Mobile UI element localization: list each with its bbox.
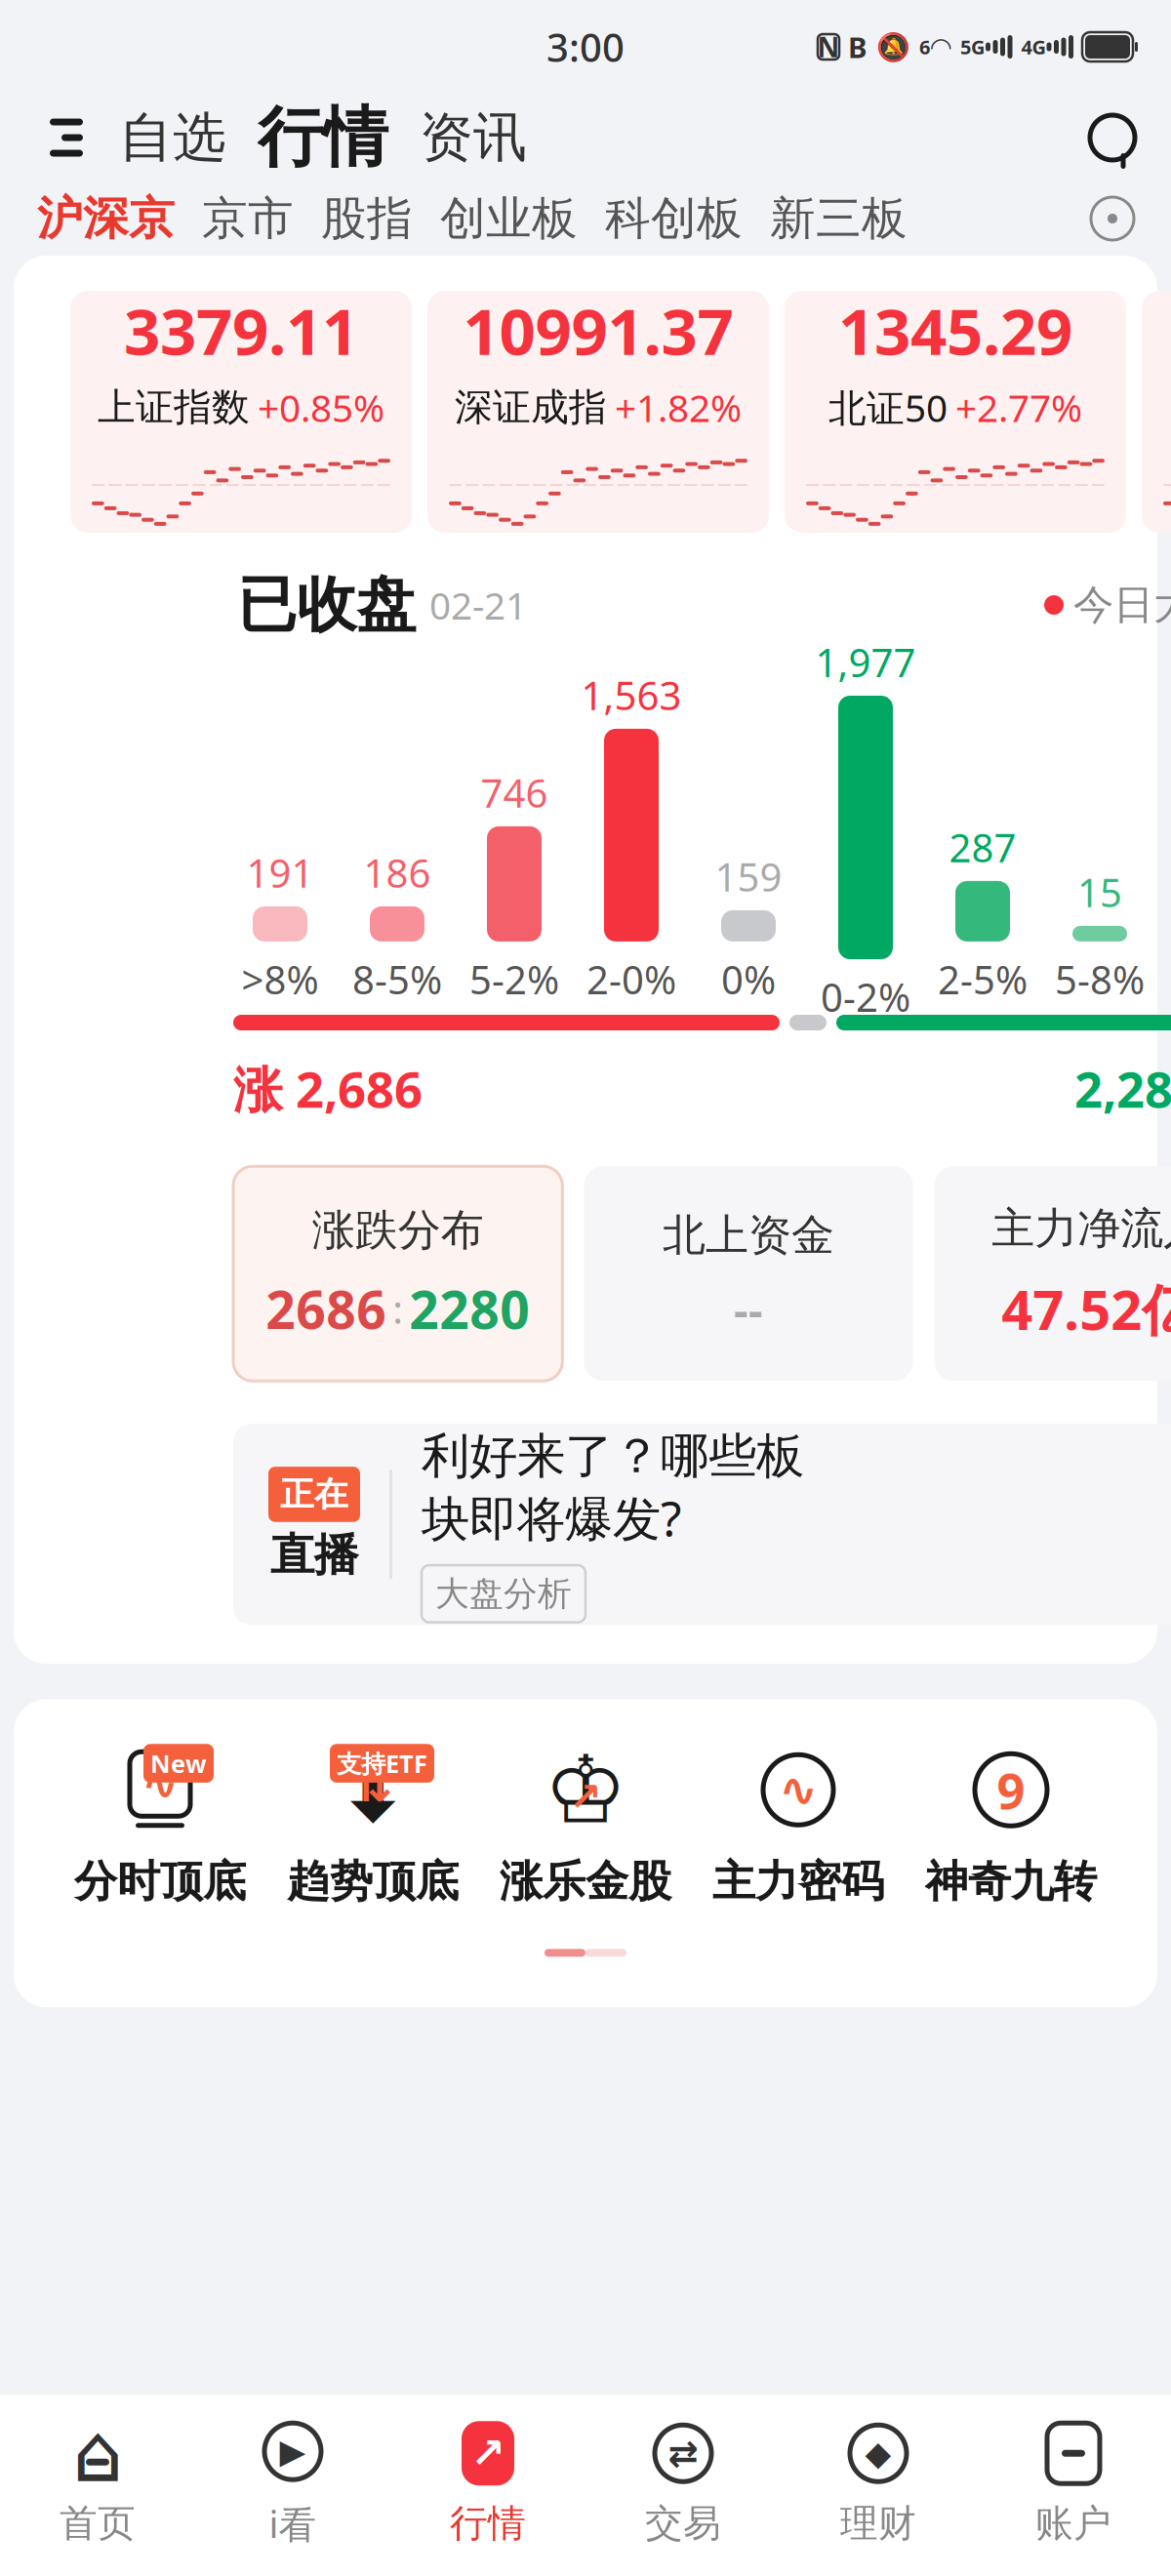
staticText: 2-5%: [938, 953, 1028, 1005]
staticText: 趋势顶底: [287, 1855, 459, 1908]
button[interactable]: Search: [1073, 99, 1151, 177]
button[interactable]: ∿: [54, 1744, 266, 1908]
staticText: 深证成指: [455, 384, 607, 430]
button[interactable]: 自选: [103, 99, 242, 177]
staticText: 15: [1077, 866, 1122, 918]
button[interactable]: Menu: [29, 99, 103, 177]
button[interactable]: 行情: [242, 99, 404, 177]
staticText: ⇄: [668, 2433, 698, 2474]
staticText: ∿: [141, 1759, 179, 1809]
button[interactable]: 3379.11: [70, 291, 412, 533]
staticText: ◠: [931, 32, 951, 62]
staticText: 北上资金: [663, 1209, 834, 1262]
staticText: 自选: [119, 105, 226, 170]
button[interactable]: ▶: [195, 2410, 390, 2556]
staticText: 1,563: [581, 669, 682, 721]
staticText: 1345.29: [838, 288, 1072, 372]
staticText: 3379.11: [124, 288, 358, 372]
staticText: 159: [715, 851, 782, 902]
staticText: 5-8%: [1055, 953, 1145, 1005]
staticText: 行情: [258, 98, 388, 178]
staticText: 正在: [280, 1474, 348, 1515]
button[interactable]: ↗: [390, 2410, 585, 2556]
staticText: ⬇: [335, 1738, 411, 1841]
staticText: :: [392, 1283, 403, 1335]
button[interactable]: ∿: [692, 1744, 905, 1908]
button[interactable]: 1345.29: [785, 291, 1126, 533]
staticText: 6: [919, 34, 930, 60]
staticText: 10991.37: [463, 288, 733, 372]
staticText: i看: [269, 2498, 317, 2548]
staticText: ↗: [470, 2430, 505, 2477]
staticText: +1.82%: [615, 382, 742, 432]
staticText: 8-5%: [352, 953, 442, 1005]
button[interactable]: Edit categories: [1077, 183, 1148, 254]
button[interactable]: 10991.37: [427, 291, 769, 533]
staticText: 交易: [645, 2500, 721, 2547]
staticText: 支持ETF: [337, 1747, 427, 1780]
staticText: B: [848, 28, 868, 66]
button[interactable]: 京市: [188, 183, 307, 254]
staticText: 首页: [60, 2500, 136, 2547]
button[interactable]: 沪深京: [23, 183, 188, 254]
button[interactable]: ♔: [479, 1744, 692, 1908]
staticText: 2,280 跌: [1074, 1056, 1171, 1121]
button[interactable]: 新三板: [756, 183, 921, 254]
staticText: 5G: [960, 34, 985, 60]
button[interactable]: ⌂: [0, 2410, 195, 2556]
staticText: 0-2%: [821, 971, 910, 1023]
staticText: 京市: [202, 191, 294, 246]
button[interactable]: 主力净流入: [935, 1166, 1171, 1381]
staticText: 神奇九转: [925, 1855, 1097, 1908]
staticText: 47.52亿: [1001, 1272, 1171, 1345]
button[interactable]: 涨跌分布: [233, 1166, 562, 1381]
button[interactable]: 账户: [976, 2410, 1171, 2556]
staticText: 4G: [1021, 34, 1046, 60]
staticText: 利好来了？哪些板块即将爆发?: [422, 1426, 804, 1550]
staticText: 3:00: [546, 21, 625, 73]
staticText: 涨乐金股: [500, 1855, 671, 1908]
staticText: 上证指数: [98, 384, 250, 430]
staticText: 创业板: [440, 191, 578, 246]
staticText: ↗: [569, 1775, 602, 1819]
staticText: 账户: [1035, 2500, 1111, 2547]
staticText: 直播: [270, 1528, 358, 1582]
button[interactable]: ◆: [781, 2410, 976, 2556]
staticText: 2280: [409, 1274, 530, 1343]
staticText: 股指: [321, 191, 413, 246]
button[interactable]: 正在: [233, 1424, 1171, 1625]
staticText: --: [734, 1279, 763, 1338]
staticText: ▶: [280, 2432, 306, 2471]
staticText: 分时顶底: [74, 1855, 246, 1908]
button[interactable]: 股指: [307, 183, 426, 254]
button[interactable]: 北上资金: [584, 1166, 913, 1381]
staticText: 今日大盘: [1073, 580, 1171, 630]
staticText: 资讯: [420, 105, 527, 170]
button[interactable]: 创业板: [426, 183, 591, 254]
staticText: 涨跌分布: [312, 1204, 484, 1257]
button[interactable]: ⇄: [585, 2410, 781, 2556]
staticText: 已收盘: [237, 568, 416, 642]
staticText: 大盘分析: [435, 1573, 572, 1614]
staticText: ∿: [779, 1763, 818, 1816]
button[interactable]: 科创板: [591, 183, 756, 254]
staticText: ⌂: [72, 2407, 123, 2499]
button[interactable]: 9: [905, 1744, 1117, 1908]
staticText: 746: [481, 767, 548, 819]
staticText: 主力净流入: [992, 1202, 1171, 1255]
button[interactable]: ⬇: [266, 1744, 479, 1908]
staticText: 1,977: [815, 636, 916, 688]
staticText: 287: [949, 821, 1016, 873]
staticText: ♔: [544, 1737, 627, 1843]
button[interactable]: 今日大盘: [1044, 561, 1171, 649]
staticText: 0%: [721, 953, 776, 1005]
staticText: 5-2%: [469, 953, 559, 1005]
button[interactable]: 资讯: [404, 99, 543, 177]
staticText: 2-0%: [586, 953, 676, 1005]
staticText: 9: [997, 1757, 1025, 1823]
staticText: 科创板: [605, 191, 743, 246]
button[interactable]: 2: [1142, 291, 1171, 533]
staticText: 主力密码: [712, 1855, 884, 1908]
staticText: >8%: [242, 953, 319, 1005]
staticText: 2686: [266, 1274, 387, 1343]
